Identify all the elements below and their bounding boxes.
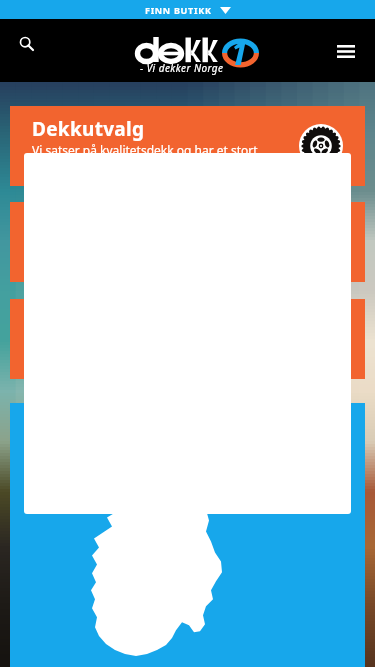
button[interactable]: Dekkutvalg (10, 106, 365, 186)
staticText: FINN BUTIKK (145, 4, 212, 16)
button[interactable] (10, 403, 365, 667)
button[interactable]: Search (12, 29, 40, 57)
button[interactable]: FINN BUTIKK (0, 0, 375, 19)
button[interactable]: Menu (331, 36, 361, 66)
staticText: Dekkutvalg (32, 116, 145, 142)
staticText: - Vi dekker Norge (140, 61, 224, 75)
button[interactable]: Dekkhotell (10, 202, 365, 282)
button[interactable]: Verksted (10, 299, 365, 379)
staticText: Vi satser på kvalitetsdekk og har et sto… (32, 142, 258, 158)
